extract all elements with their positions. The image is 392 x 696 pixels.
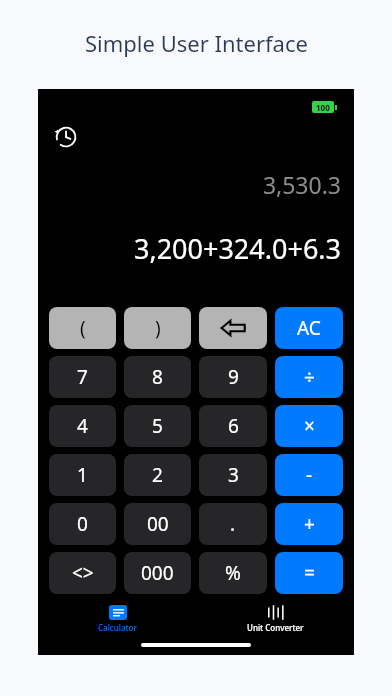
button[interactable]: 9 [199,356,267,398]
button[interactable]: 3 [199,454,267,496]
button[interactable]: 5 [124,405,191,447]
staticText: - [306,462,313,488]
button[interactable]: 2 [124,454,191,496]
button[interactable]: AC [275,307,343,349]
staticText: ) [155,315,161,341]
staticText: 4 [77,413,88,439]
button[interactable]: 00 [124,503,191,545]
button[interactable]: × [275,405,343,447]
staticText: 3,530.3 [262,169,341,200]
button[interactable]: ) [124,307,191,349]
staticText: ( [80,315,86,341]
staticText: AC [297,315,321,341]
staticText: × [304,413,315,439]
staticText: + [304,511,315,537]
staticText: 3 [228,462,239,488]
staticText: 100 [316,102,330,113]
staticText: 00 [147,511,169,537]
button[interactable]: . [199,503,267,545]
staticText: Unit Converter [247,622,304,633]
button[interactable]: 8 [124,356,191,398]
staticText: = [304,560,315,586]
staticText: 1 [77,462,88,488]
staticText: 2 [152,462,163,488]
button[interactable]: ÷ [275,356,343,398]
staticText: 000 [141,560,174,586]
button[interactable]: Unit Converter [196,602,354,636]
button[interactable]: ( [49,307,116,349]
staticText: 9 [228,364,239,390]
staticText: 7 [77,364,88,390]
staticText: Calculator [98,622,137,633]
button[interactable]: = [275,552,343,594]
button[interactable]: 4 [49,405,116,447]
staticText: 8 [152,364,163,390]
staticText: <> [72,560,94,586]
staticText: 6 [228,413,239,439]
staticText: Simple User Interface [85,28,308,58]
button[interactable]: 7 [49,356,116,398]
button[interactable]: + [275,503,343,545]
staticText: ÷ [304,364,315,390]
button[interactable]: % [199,552,267,594]
button[interactable]: Backspace [199,307,267,349]
staticText: 3,200+324.0+6.3 [133,230,341,267]
staticText: . [230,511,236,537]
button[interactable]: <> [49,552,116,594]
staticText: 5 [152,413,163,439]
button[interactable]: Calculator [38,602,196,636]
staticText: % [225,560,241,586]
button[interactable]: 1 [49,454,116,496]
staticText: 0 [77,511,88,537]
button[interactable]: History [48,119,82,153]
button[interactable]: - [275,454,343,496]
button[interactable]: 0 [49,503,116,545]
button[interactable]: 6 [199,405,267,447]
button[interactable]: 000 [124,552,191,594]
